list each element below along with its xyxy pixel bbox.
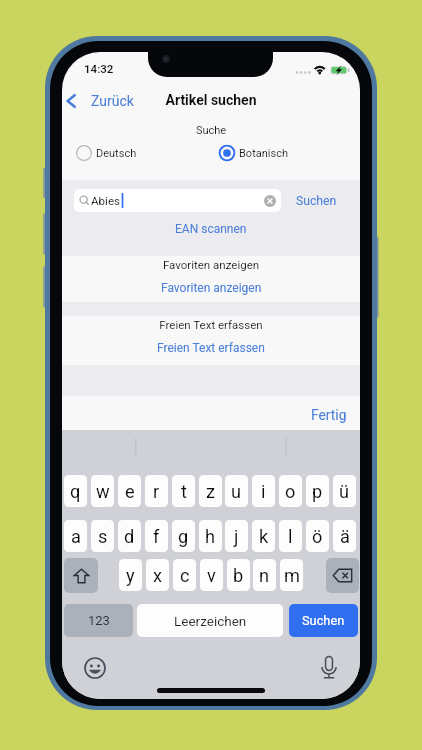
button[interactable]: Shift [64,558,98,593]
staticText: Freien Text erfassen [62,318,360,331]
button[interactable]: Deutsch [75,142,138,164]
staticText: g [178,526,189,547]
button[interactable]: w [91,475,114,507]
button[interactable]: z [199,475,222,507]
staticText: ä [340,526,350,547]
button[interactable]: n [253,559,276,591]
staticText: Freien Text erfassen [157,341,265,355]
button[interactable]: ä [333,520,356,552]
button[interactable]: b [227,559,250,591]
button[interactable]: o [279,475,302,507]
staticText: y [126,565,135,586]
button[interactable]: Leerzeichen [137,604,283,637]
staticText: Fertig [311,407,347,423]
staticText: v [207,565,216,586]
staticText: Leerzeichen [174,613,247,629]
button[interactable]: p [306,475,329,507]
button[interactable]: Suchen [291,190,342,212]
staticText: Deutsch [96,147,137,160]
button[interactable]: Fertig [305,402,353,428]
button[interactable]: v [200,559,223,591]
staticText: d [124,526,135,547]
button[interactable]: a [64,520,87,552]
staticText: e [125,481,135,502]
button[interactable]: Abies [74,189,281,212]
staticText: n [259,565,270,586]
staticText: Zurück [91,93,134,109]
staticText: EAN scannen [175,222,247,236]
button[interactable]: t [172,475,195,507]
staticText: Botanisch [239,147,288,160]
staticText: ü [339,481,350,502]
button[interactable]: c [173,559,196,591]
button[interactable]: d [118,520,141,552]
staticText: h [205,526,216,547]
staticText: a [71,526,81,547]
staticText: Suche [62,124,360,137]
staticText: Suchen [302,613,345,628]
button[interactable]: Suchen [289,604,358,637]
button[interactable]: m [280,559,303,591]
staticText: 14:32 [84,62,114,75]
staticText: w [96,481,110,502]
button[interactable]: Dictation [317,655,341,681]
staticText: Suchen [296,194,337,208]
button[interactable]: 123 [64,604,133,637]
button[interactable]: Freien Text erfassen [62,337,360,359]
button[interactable]: ö [306,520,329,552]
staticText: m [284,565,300,586]
button[interactable]: k [252,520,275,552]
button[interactable]: j [225,520,248,552]
button[interactable]: u [225,475,248,507]
button[interactable]: y [119,559,142,591]
staticText: i [261,481,266,502]
staticText: q [70,481,81,502]
staticText: p [312,481,323,502]
staticText: Abies [91,194,121,208]
staticText: b [233,565,244,586]
staticText: x [153,565,163,586]
button[interactable]: l [279,520,302,552]
staticText: r [153,481,160,502]
staticText: l [288,526,293,547]
staticText: o [285,481,296,502]
staticText: t [181,481,187,502]
button[interactable]: Favoriten anzeigen [62,277,360,299]
staticText: s [98,526,108,547]
button[interactable]: i [252,475,275,507]
button[interactable]: Zurück [62,89,140,113]
staticText: 123 [88,613,110,628]
button[interactable]: r [145,475,168,507]
button[interactable]: Botanisch [218,142,289,164]
button[interactable]: f [145,520,168,552]
button[interactable]: Clear text [264,195,276,207]
button[interactable]: s [91,520,114,552]
button[interactable]: h [199,520,222,552]
staticText: Favoriten anzeigen [62,258,360,271]
staticText: Favoriten anzeigen [161,281,262,295]
button[interactable]: e [118,475,141,507]
button[interactable]: Backspace [326,558,359,593]
staticText: j [234,526,239,547]
staticText: c [180,565,190,586]
staticText: u [231,481,242,502]
staticText: z [206,481,216,502]
button[interactable]: q [64,475,87,507]
button[interactable]: EAN scannen [62,218,360,240]
staticText: ö [312,526,323,547]
button[interactable]: ü [333,475,356,507]
staticText: Artikel suchen [62,92,360,108]
button[interactable]: x [146,559,169,591]
staticText: k [259,526,269,547]
staticText: f [153,526,160,547]
button[interactable]: g [172,520,195,552]
button[interactable]: Emoji keyboard [83,656,107,680]
